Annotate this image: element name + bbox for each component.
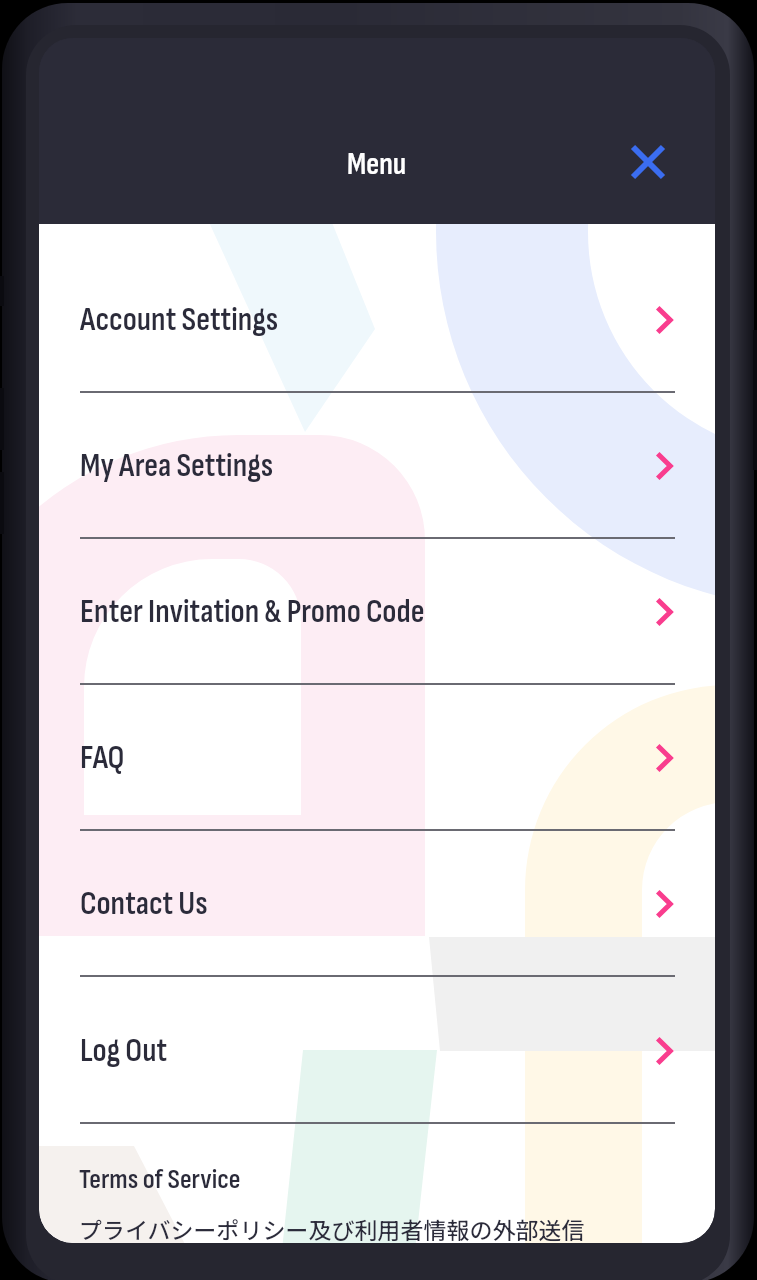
button[interactable]: Account Settings	[39, 247, 715, 393]
staticText: Menu	[347, 146, 407, 183]
button[interactable]: FAQ	[39, 685, 715, 831]
staticText: Contact Us	[80, 884, 208, 924]
button[interactable]: Contact Us	[39, 831, 715, 977]
button[interactable]: Enter Invitation & Promo Code	[39, 539, 715, 685]
button[interactable]: Log Out	[39, 978, 715, 1124]
staticText: Account Settings	[80, 300, 279, 340]
button[interactable]: My Area Settings	[39, 393, 715, 539]
staticText: Log Out	[80, 1031, 168, 1071]
staticText: My Area Settings	[80, 446, 274, 486]
staticText: FAQ	[80, 738, 125, 778]
staticText: Enter Invitation & Promo Code	[80, 592, 425, 632]
button[interactable]: Close	[613, 127, 683, 197]
button[interactable]: Terms of Service	[79, 1163, 241, 1197]
button[interactable]: プライバシーポリシー及び利用者情報の外部送信	[79, 1212, 585, 1243]
